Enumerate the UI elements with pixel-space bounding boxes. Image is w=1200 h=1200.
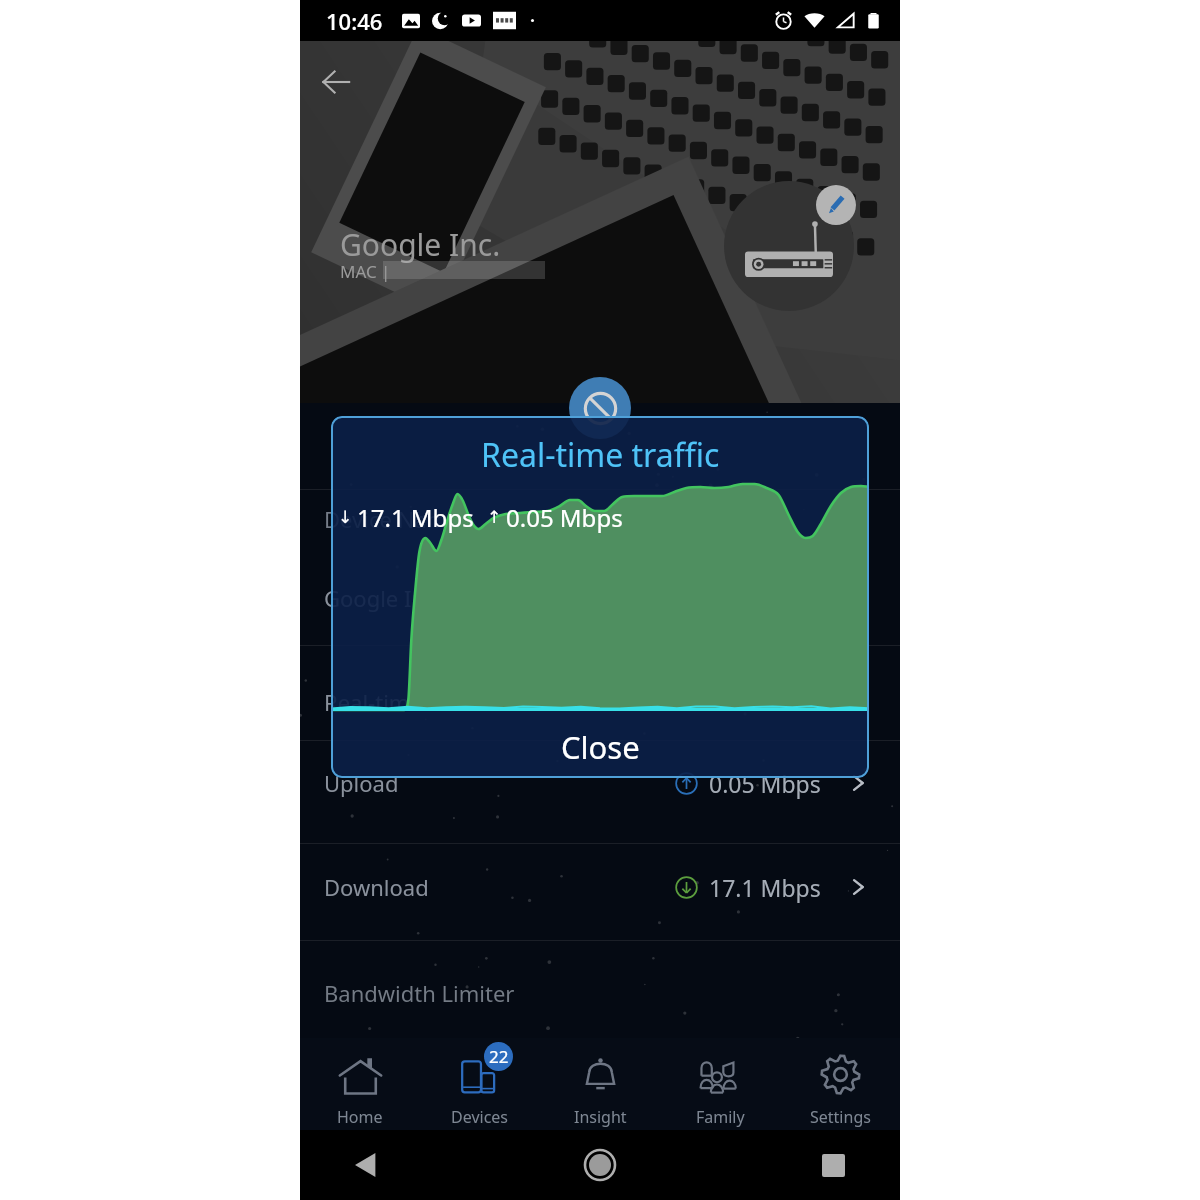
staticText: Upload xyxy=(324,768,399,798)
staticText: 22 xyxy=(489,1045,509,1068)
button[interactable]: Edit xyxy=(816,185,856,225)
button[interactable]: Family xyxy=(660,1038,780,1130)
button[interactable]: 22 xyxy=(420,1038,540,1130)
button[interactable]: Recents xyxy=(810,1142,856,1188)
button[interactable]: Insight xyxy=(540,1038,660,1130)
staticText: Download xyxy=(324,872,429,902)
button[interactable]: Back xyxy=(344,1142,390,1188)
staticText: ↑ xyxy=(487,507,502,527)
staticText: Device Name xyxy=(324,504,460,534)
staticText: Insight xyxy=(574,1106,627,1128)
button[interactable]: Back xyxy=(310,56,362,108)
button[interactable]: Home xyxy=(300,1038,420,1130)
button[interactable]: Block device xyxy=(569,377,631,439)
staticText: 0.05 Mbps xyxy=(709,768,821,799)
button[interactable]: Home xyxy=(577,1142,623,1188)
staticText: 0.05 Mbps xyxy=(506,501,623,534)
staticText: Google Inc. xyxy=(340,224,501,265)
staticText: Settings xyxy=(810,1106,871,1128)
staticText: ↓ xyxy=(338,507,353,527)
staticText: 17.1 Mbps xyxy=(709,872,821,903)
staticText: Real-time traffic xyxy=(324,687,488,717)
staticText: Bandwidth Limiter xyxy=(324,978,515,1008)
staticText: Devices xyxy=(451,1106,509,1128)
staticText: Family xyxy=(696,1106,745,1128)
staticText: Home xyxy=(337,1106,383,1128)
button[interactable]: Device avatar xyxy=(724,181,854,311)
staticText: Close xyxy=(561,726,640,768)
staticText: MAC | xyxy=(340,260,391,283)
staticText: Real-time traffic xyxy=(481,433,720,477)
staticText: 10:46 xyxy=(326,6,383,36)
button[interactable]: Settings xyxy=(780,1038,900,1130)
staticText: Google Inc. xyxy=(324,583,442,613)
staticText: 17.1 Mbps xyxy=(357,501,474,534)
button[interactable]: Close xyxy=(331,715,869,778)
